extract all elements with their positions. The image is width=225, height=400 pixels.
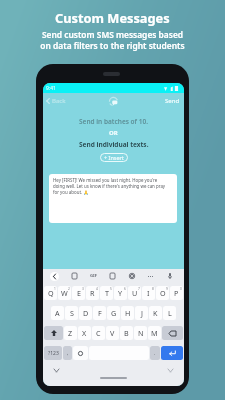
button[interactable]: Recents [166,366,175,375]
staticText: G [111,308,117,318]
staticText: C [96,328,101,338]
button[interactable]: Y [114,286,127,300]
staticText: 9:41 [46,85,56,92]
button[interactable]: R [86,286,99,300]
button[interactable]: Z [64,326,77,340]
button[interactable]: A [51,306,64,320]
staticText: 7 [138,287,140,291]
button[interactable]: B [120,326,133,340]
staticText: GIF [90,273,97,279]
button[interactable]: Hey [FIRST]! We missed you last night. H… [49,174,177,223]
button[interactable]: X [78,326,91,340]
staticText: 3 [82,287,84,291]
staticText: S [70,308,74,318]
button[interactable]: G [107,306,120,320]
button[interactable]: E [72,286,85,300]
staticText: Hey [FIRST]! We missed you last night. H… [53,177,166,195]
staticText: Custom Messages [55,9,170,26]
button[interactable]: V [106,326,119,340]
button[interactable]: K [149,306,162,320]
staticText: V [110,328,115,338]
button[interactable]: Symbols [44,346,62,360]
staticText: B [124,328,129,338]
button[interactable]: Q [44,286,57,300]
button[interactable]: C [92,326,105,340]
button[interactable]: Enter [161,346,183,360]
staticText: E [77,288,81,298]
button[interactable]: F [93,306,106,320]
button[interactable]: Emoji [73,346,88,360]
button[interactable]: Sticker [103,269,122,283]
button[interactable]: I [142,286,155,300]
staticText: 1 [54,287,56,291]
button[interactable]: S [65,306,78,320]
staticText: O [160,288,166,298]
button[interactable]: O [156,286,169,300]
button[interactable]: Back [50,272,59,281]
button[interactable]: Settings [122,269,141,283]
staticText: Q [48,288,54,298]
staticText: K [153,308,158,318]
button[interactable]: Back [43,94,70,108]
staticText: OR [109,129,118,137]
staticText: H [125,308,131,318]
button[interactable]: D [79,306,92,320]
staticText: M [151,328,158,338]
button[interactable]: Backspace [162,326,183,340]
button[interactable]: Hide keyboard [52,366,61,375]
button[interactable]: L [163,306,176,320]
staticText: P [174,288,179,298]
button[interactable]: J [135,306,148,320]
button[interactable]: Comma [63,346,72,360]
staticText: J [141,308,143,318]
button[interactable]: P [170,286,183,300]
staticText: 4 [96,287,98,291]
button[interactable]: Clipboard [64,269,84,283]
button[interactable]: Voice input [160,269,179,283]
staticText: 2 [68,287,70,291]
button[interactable]: T [100,286,113,300]
staticText: T [105,288,109,298]
button[interactable]: U [128,286,141,300]
staticText: Send [165,97,180,105]
button[interactable]: Send [161,94,184,108]
staticText: X [82,328,87,338]
staticText: + Insert [104,154,124,161]
button[interactable]: GIF [84,269,103,283]
staticText: 6 [124,287,126,291]
staticText: L [168,308,172,318]
staticText: D [83,308,89,318]
staticText: 8 [152,287,154,291]
staticText: Send individual texts. [79,140,149,149]
staticText: Send custom SMS messages based on data f… [40,29,185,51]
button[interactable]: + Insert [100,153,128,162]
staticText: U [132,288,138,298]
staticText: Send in batches of 10. [79,117,148,126]
button[interactable]: Period [150,346,160,360]
button[interactable]: W [58,286,71,300]
staticText: , [67,350,69,357]
staticText: 0 [180,287,182,291]
staticText: R [90,288,95,298]
button[interactable]: M [148,326,161,340]
staticText: I [147,288,150,298]
staticText: F [98,308,102,318]
button[interactable]: N [134,326,147,340]
button[interactable]: More [141,269,160,283]
staticText: Y [118,288,123,298]
staticText: A [55,308,60,318]
staticText: 9 [166,287,168,291]
staticText: Z [68,328,73,338]
staticText: W [61,288,68,298]
staticText: Back [52,97,66,105]
staticText: 5 [110,287,112,291]
staticText: . [154,350,156,357]
staticText: N [138,328,144,338]
button[interactable]: Shift [44,326,63,340]
button[interactable]: H [121,306,134,320]
staticText: ?123 [48,350,59,357]
